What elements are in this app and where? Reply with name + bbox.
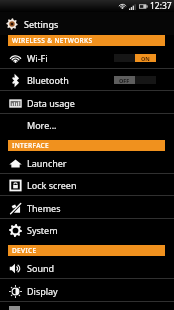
staticText: DEVICE [12, 246, 37, 255]
button[interactable]: Sound [0, 256, 174, 279]
staticText: More... [27, 119, 57, 131]
button[interactable]: More... [0, 114, 174, 136]
button[interactable]: OFF [114, 76, 156, 84]
staticText: Launcher [27, 157, 67, 169]
staticText: Lock screen [27, 179, 77, 191]
staticText: OFF [119, 77, 130, 84]
other: Display [9, 285, 22, 298]
staticText: Sound [27, 262, 55, 274]
button[interactable]: Launcher [0, 151, 174, 174]
staticText: System [27, 224, 58, 236]
other: Sound [9, 262, 22, 275]
staticText: WIRELESS & NETWORKS [12, 36, 93, 45]
button[interactable]: Wi-Fi [0, 46, 174, 69]
staticText: Settings [24, 18, 59, 30]
staticText: Themes [27, 202, 61, 214]
button[interactable]: Settings [0, 12, 174, 35]
staticText: Display [27, 285, 58, 297]
staticText: Wi-Fi [27, 52, 48, 64]
staticText: INTERFACE [12, 141, 50, 150]
button[interactable]: System [0, 219, 174, 241]
other: Wi-Fi [9, 52, 22, 65]
other: Launcher [9, 157, 22, 170]
other: System [9, 224, 22, 237]
other: Themes [9, 202, 22, 215]
button[interactable]: Themes [0, 196, 174, 219]
staticText: Data usage [27, 97, 75, 109]
button[interactable]: ON [114, 54, 156, 62]
staticText: 12:37 [150, 0, 172, 12]
other: Bluetooth [9, 74, 22, 87]
button[interactable]: Lock screen [0, 174, 174, 196]
button[interactable] [0, 302, 174, 310]
staticText: ON [141, 55, 150, 62]
button[interactable]: Display [0, 279, 174, 302]
button[interactable]: Data usage [0, 91, 174, 114]
button[interactable]: Bluetooth [0, 69, 174, 91]
other: Data usage [9, 97, 22, 110]
other: Lock screen [9, 179, 22, 192]
staticText: Bluetooth [27, 74, 69, 86]
